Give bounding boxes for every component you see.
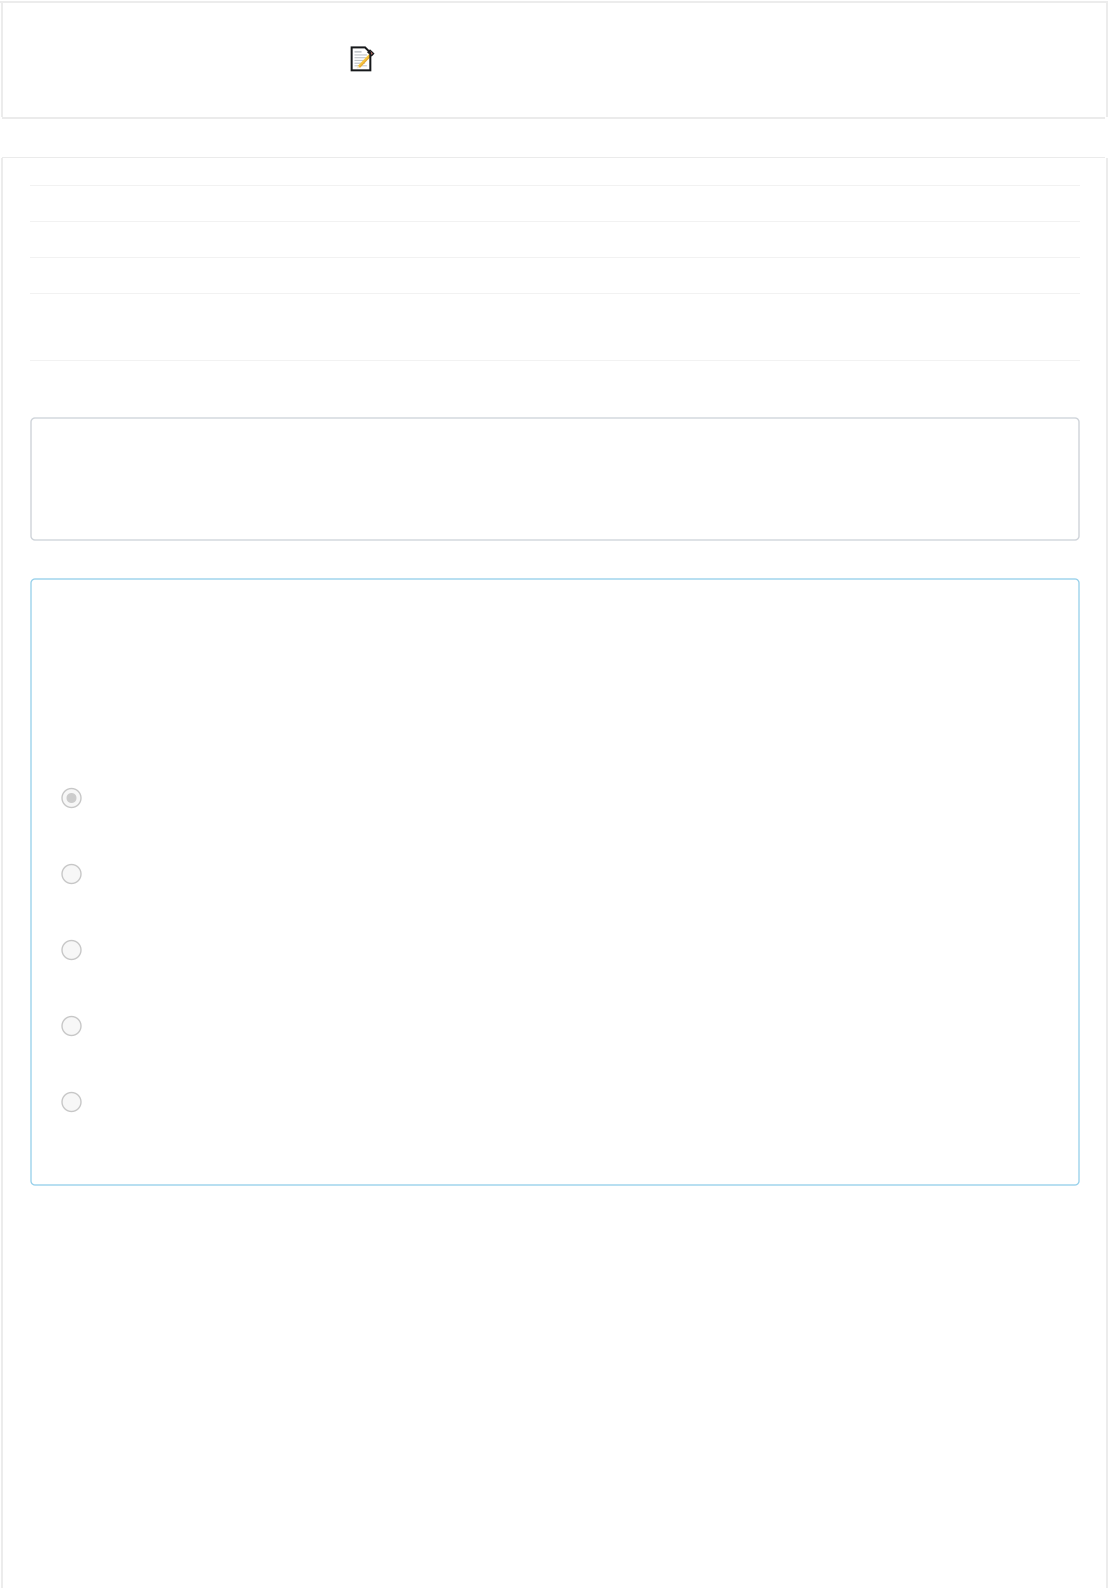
button[interactable]: Option 5	[31, 1064, 1079, 1140]
button[interactable]: Option 4	[31, 988, 1079, 1064]
button[interactable]: Option 1	[31, 760, 1079, 836]
button[interactable]: Option 2	[31, 836, 1079, 912]
button[interactable]: Form	[349, 45, 376, 72]
button[interactable]: Short answer	[2, 418, 1105, 540]
button[interactable]: Option 3	[31, 912, 1079, 988]
